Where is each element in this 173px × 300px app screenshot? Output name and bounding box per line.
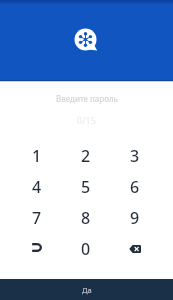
button[interactable]: 0 (61, 233, 110, 264)
staticText: 6 (130, 176, 140, 198)
staticText: 1 (32, 145, 42, 167)
button[interactable]: Backspace (110, 233, 159, 264)
button[interactable]: 3 (110, 140, 159, 171)
button[interactable]: 4 (12, 171, 61, 202)
button[interactable]: 2 (61, 140, 110, 171)
staticText: 0/15 (77, 114, 96, 126)
button[interactable]: 1 (12, 140, 61, 171)
button[interactable]: 7 (12, 202, 61, 233)
staticText: 2 (81, 145, 91, 167)
button[interactable]: 8 (61, 202, 110, 233)
staticText: 0 (81, 238, 91, 260)
staticText: 7 (32, 207, 42, 229)
staticText: 9 (130, 207, 140, 229)
staticText: Да (82, 285, 92, 295)
staticText: 4 (32, 176, 42, 198)
staticText: Введите пароль (56, 93, 118, 104)
button[interactable]: Да (0, 279, 173, 300)
button[interactable]: 5 (61, 171, 110, 202)
staticText: 5 (81, 176, 91, 198)
button[interactable]: 9 (110, 202, 159, 233)
button[interactable]: Clear (12, 233, 61, 264)
button[interactable]: 6 (110, 171, 159, 202)
staticText: 3 (130, 145, 140, 167)
staticText: 8 (81, 207, 91, 229)
